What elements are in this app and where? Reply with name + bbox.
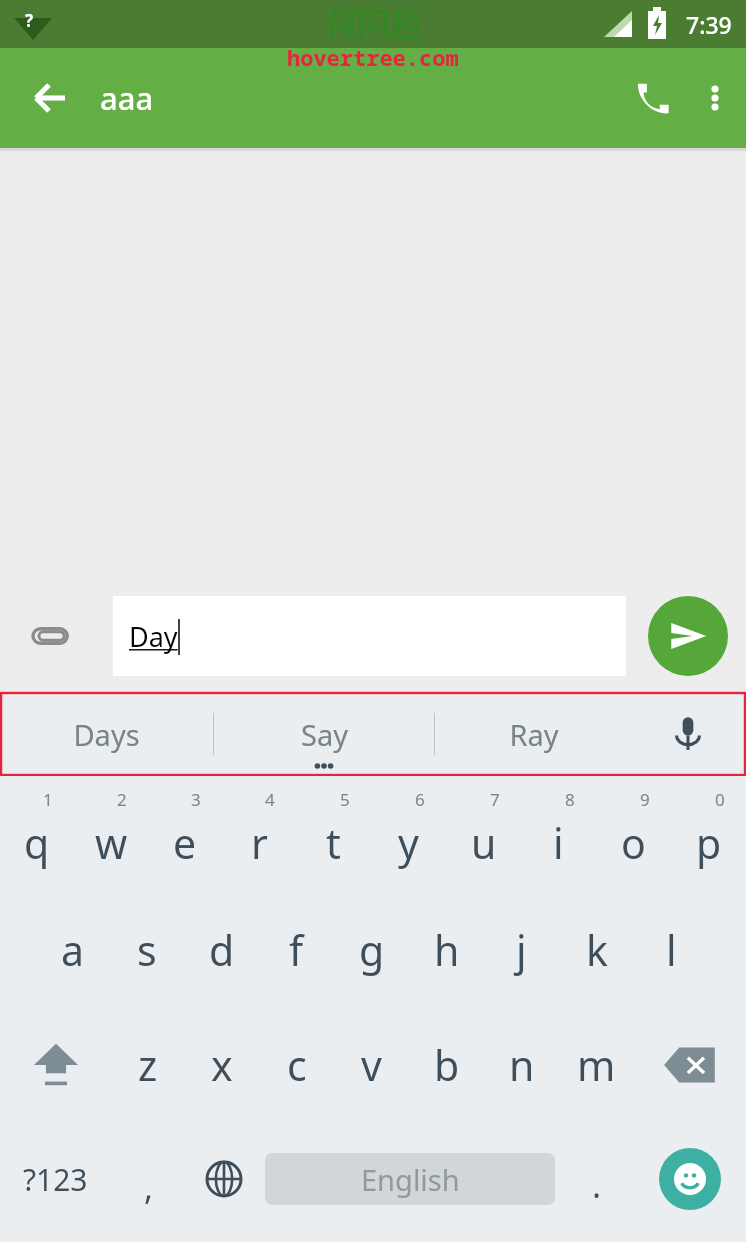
staticText: p	[696, 815, 722, 871]
button[interactable]: Change language	[186, 1122, 261, 1236]
button[interactable]: Say	[214, 692, 434, 776]
button[interactable]: 3	[148, 776, 222, 892]
staticText: g	[359, 922, 385, 978]
button[interactable]: Call	[622, 67, 684, 129]
staticText: ?	[25, 9, 34, 32]
staticText: x	[211, 1037, 233, 1093]
staticText: s	[137, 922, 157, 978]
staticText: 7:39	[686, 9, 732, 40]
button[interactable]: Shift	[0, 1007, 111, 1122]
button[interactable]: Day	[113, 596, 626, 676]
button[interactable]: c	[259, 1007, 334, 1122]
staticText: t	[326, 815, 341, 871]
staticText: e	[173, 815, 197, 871]
staticText: 7	[490, 788, 500, 811]
button[interactable]: m	[559, 1007, 634, 1122]
button[interactable]: 5	[296, 776, 371, 892]
button[interactable]: b	[409, 1007, 484, 1122]
button[interactable]: h	[409, 892, 484, 1007]
staticText: 1	[43, 788, 53, 811]
staticText: Day	[129, 618, 178, 655]
staticText: Say	[301, 715, 348, 754]
button[interactable]: l	[634, 892, 709, 1007]
staticText: i	[553, 815, 564, 871]
button[interactable]: x	[185, 1007, 259, 1122]
staticText: l	[666, 922, 677, 978]
button[interactable]: g	[334, 892, 409, 1007]
button[interactable]: More options	[684, 67, 746, 129]
button[interactable]: Emoji	[634, 1122, 746, 1236]
staticText: j	[516, 922, 527, 978]
staticText: r	[251, 815, 268, 871]
staticText: 何问起	[325, 4, 421, 44]
button[interactable]: a	[36, 892, 110, 1007]
staticText: 5	[340, 788, 350, 811]
staticText: o	[621, 815, 646, 871]
button[interactable]: 8	[521, 776, 596, 892]
button[interactable]: 9	[596, 776, 671, 892]
button[interactable]: Back	[22, 70, 78, 126]
button[interactable]: 7	[446, 776, 521, 892]
staticText: w	[95, 815, 128, 871]
button[interactable]: Days	[0, 692, 213, 776]
staticText: Days	[73, 715, 140, 754]
button[interactable]: v	[334, 1007, 409, 1122]
staticText: f	[289, 922, 304, 978]
staticText: aaa	[100, 77, 154, 119]
button[interactable]: s	[110, 892, 184, 1007]
button[interactable]: ?123	[0, 1122, 111, 1236]
staticText: m	[577, 1037, 616, 1093]
button[interactable]: d	[184, 892, 259, 1007]
button[interactable]: 0	[671, 776, 746, 892]
button[interactable]: Send	[648, 596, 728, 676]
button[interactable]: 1	[0, 776, 74, 892]
staticText: z	[138, 1037, 158, 1093]
staticText: Ray	[509, 715, 559, 754]
button[interactable]: z	[111, 1007, 185, 1122]
button[interactable]: ,	[111, 1122, 186, 1236]
staticText: n	[509, 1037, 535, 1093]
button[interactable]: English	[265, 1153, 555, 1205]
staticText: 2	[117, 788, 127, 811]
button[interactable]: f	[259, 892, 334, 1007]
staticText: 4	[265, 788, 275, 811]
staticText: y	[398, 815, 419, 871]
staticText: 9	[640, 788, 650, 811]
staticText: 6	[415, 788, 425, 811]
staticText: hovertree.com	[287, 42, 459, 72]
staticText: b	[434, 1037, 460, 1093]
staticText: q	[24, 815, 50, 871]
button[interactable]: n	[484, 1007, 559, 1122]
staticText: English	[361, 1160, 460, 1199]
staticText: k	[586, 922, 608, 978]
staticText: ?123	[23, 1159, 88, 1200]
staticText: 0	[715, 788, 725, 811]
button[interactable]: k	[559, 892, 634, 1007]
staticText: a	[61, 922, 85, 978]
button[interactable]: j	[484, 892, 559, 1007]
staticText: ,	[144, 1164, 154, 1210]
button[interactable]: Attach	[16, 603, 82, 669]
staticText: h	[434, 922, 460, 978]
staticText: .	[592, 1162, 602, 1208]
staticText: 8	[565, 788, 575, 811]
button[interactable]: 2	[74, 776, 148, 892]
staticText: 3	[191, 788, 201, 811]
staticText: d	[209, 922, 235, 978]
button[interactable]: Voice input	[632, 692, 744, 776]
button[interactable]: .	[559, 1122, 634, 1236]
button[interactable]: 4	[222, 776, 296, 892]
staticText: u	[471, 815, 497, 871]
staticText: v	[361, 1037, 382, 1093]
button[interactable]: Backspace	[634, 1007, 746, 1122]
button[interactable]: 6	[371, 776, 446, 892]
button[interactable]: Ray	[435, 692, 632, 776]
staticText: c	[287, 1037, 307, 1093]
